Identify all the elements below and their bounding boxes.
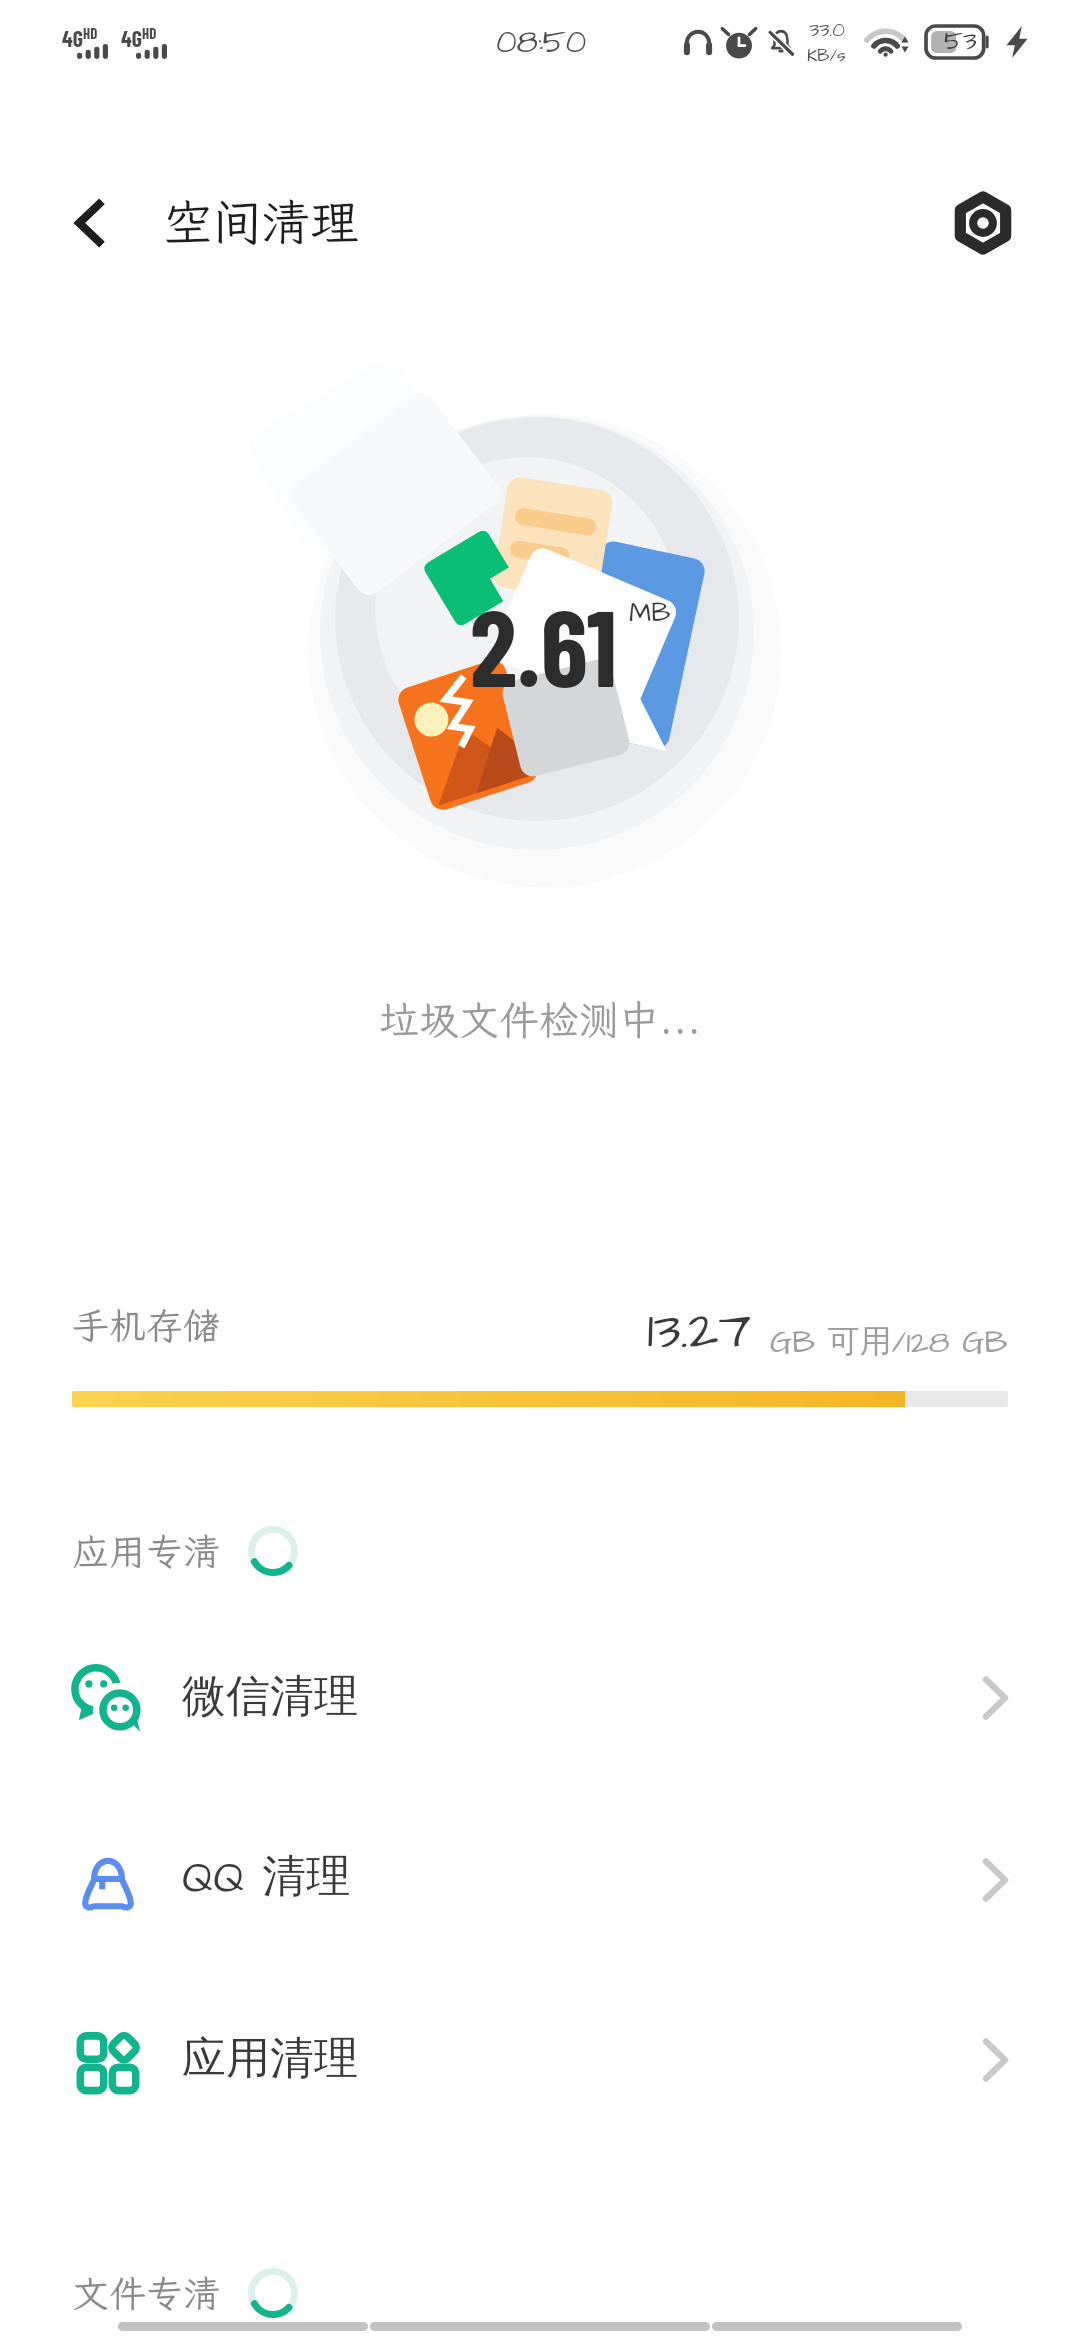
staticText: 应用清理 [182,2031,358,2086]
button[interactable]: 应用清理 [0,1995,1080,2125]
staticText: 53 [944,22,977,60]
button[interactable]: Settings [938,178,1028,268]
staticText: 垃圾文件检测中... [0,993,1080,1046]
staticText: 文件专清 [72,2269,220,2318]
button[interactable]: Recents [118,2322,368,2331]
staticText: 4G [121,25,142,51]
staticText: GB 可用/128 GB [770,1320,1008,1364]
staticText: 空间清理 [163,189,360,254]
staticText: KB/s [807,44,846,68]
button[interactable]: Back navigation [712,2322,962,2331]
staticText: 4G [62,25,83,51]
staticText: HD [142,24,157,42]
staticText: QQ 清理 [182,1848,351,1909]
staticText: 2.61 [470,580,618,708]
staticText: 33.0 [809,16,845,44]
staticText: 应用专清 [72,1527,220,1576]
staticText: MB [629,594,671,632]
button[interactable]: 微信清理 [0,1633,1080,1763]
staticText: 微信清理 [182,1669,358,1724]
button[interactable]: Home [370,2322,710,2331]
button[interactable]: QQ 清理 [0,1815,1080,1945]
button[interactable]: Back [45,178,135,268]
staticText: 手机存储 [72,1301,220,1350]
staticText: 13.27 [647,1295,752,1369]
staticText: 08:50 [496,19,586,65]
staticText: HD [83,24,98,42]
